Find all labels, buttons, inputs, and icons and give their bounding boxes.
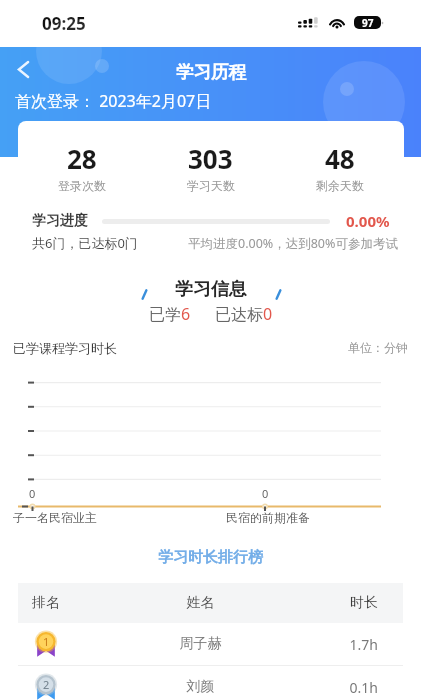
staticText: 登录次数	[58, 178, 106, 193]
staticText: 学习时长排行榜	[158, 548, 263, 567]
staticText: 学习进度	[32, 212, 88, 230]
staticText: 已学课程学习时长	[13, 340, 117, 356]
staticText: 0	[262, 486, 269, 501]
staticText: 09:25	[42, 12, 86, 35]
staticText: 排名	[32, 594, 133, 612]
staticText: 平均进度0.00%，达到80%可参加考试	[188, 235, 398, 252]
button[interactable]: Back	[5, 51, 41, 87]
staticText: 共6门，已达标0门	[32, 234, 138, 252]
staticText: 剩余天数	[316, 178, 364, 193]
staticText: 周子赫	[133, 635, 268, 653]
staticText: 1.7h	[268, 635, 378, 654]
staticText: 2	[43, 677, 50, 692]
staticText: 首次登录： 2023年2月07日	[15, 90, 212, 112]
button[interactable]: 2	[18, 666, 403, 700]
button[interactable]: 1	[18, 623, 403, 665]
staticText: 民宿的前期准备	[226, 510, 310, 525]
staticText: 0	[29, 486, 36, 501]
staticText: 姓名	[133, 594, 268, 612]
staticText: 学习信息	[175, 278, 247, 301]
staticText: 1	[43, 634, 50, 649]
staticText: 97	[362, 16, 374, 29]
staticText: 48	[325, 141, 355, 176]
staticText: 0.00%	[346, 211, 390, 231]
staticText: 刘颜	[133, 678, 268, 696]
staticText: 0.1h	[268, 678, 378, 697]
staticText: 学习历程	[176, 61, 246, 83]
staticText: 时长	[268, 594, 378, 612]
staticText: 28	[67, 141, 97, 176]
staticText: 单位：分钟	[348, 340, 408, 355]
staticText: 学习天数	[187, 178, 235, 193]
staticText: 303	[188, 141, 233, 176]
staticText: 子一名民宿业主	[13, 510, 97, 525]
staticText: 已学6 已达标0	[149, 303, 273, 325]
